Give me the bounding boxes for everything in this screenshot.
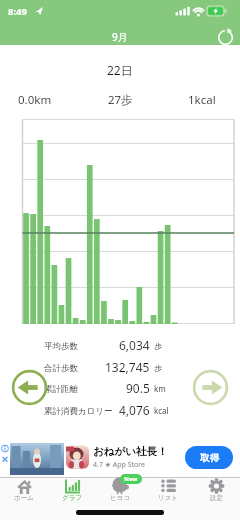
staticText: 歩	[154, 363, 162, 373]
button[interactable]: ホーム	[0, 478, 48, 508]
staticText: おねがい社長！	[93, 445, 168, 458]
button[interactable]: 取得	[185, 446, 233, 469]
button[interactable]	[11, 369, 48, 406]
staticText: ホーム	[14, 494, 34, 502]
staticText: 4,076	[119, 402, 150, 417]
staticText: ヒヨコ	[110, 494, 130, 502]
staticText: 132,745	[105, 359, 150, 374]
staticText: 27歩	[108, 92, 133, 107]
staticText: 取得	[200, 452, 219, 464]
staticText: 設定	[210, 494, 223, 502]
button[interactable]: リスト	[144, 478, 192, 508]
staticText: グラフ	[62, 494, 82, 502]
staticText: 平均歩数	[44, 341, 78, 352]
button[interactable]: 設定	[192, 478, 240, 508]
button[interactable]: おねがい社長！	[0, 443, 240, 475]
staticText: リスト	[158, 494, 178, 502]
staticText: 8:49	[8, 5, 27, 18]
staticText: New	[124, 475, 138, 483]
staticText: 合計歩数	[44, 363, 78, 374]
staticText: 累計消費カロリー	[44, 406, 113, 417]
button[interactable]	[192, 369, 229, 406]
staticText: 6,034	[119, 337, 150, 352]
staticText: 22日	[107, 62, 133, 78]
staticText: 90.5	[126, 380, 150, 395]
staticText: 累計距離	[44, 384, 78, 395]
staticText: 歩	[154, 341, 162, 351]
staticText: kcal	[154, 405, 169, 416]
staticText: 9月	[112, 30, 128, 44]
button[interactable]	[215, 27, 236, 47]
staticText: 1kcal	[188, 92, 216, 107]
staticText: 0.0km	[18, 92, 52, 108]
staticText: 4.7 ★ App Store	[93, 460, 146, 470]
button[interactable]: グラフ	[48, 478, 96, 508]
button[interactable]: ヒヨコ	[96, 478, 144, 508]
staticText: km	[154, 383, 166, 394]
